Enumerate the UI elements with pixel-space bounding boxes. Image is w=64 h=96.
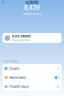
staticText: Health Sync: [9, 84, 29, 89]
staticText: 8,429: [24, 4, 40, 11]
staticText: Reminders: [9, 75, 26, 80]
button[interactable]: Health Sync: [2, 82, 61, 91]
staticText: Alex Moore: [12, 34, 31, 38]
staticText: SETTINGS: [4, 60, 19, 63]
button[interactable]: Back: [2, 1, 5, 4]
staticText: steps today: [22, 12, 41, 16]
button[interactable]: Reminders: [2, 73, 61, 82]
button[interactable]: Goals: [2, 64, 61, 73]
staticText: View profile: [12, 38, 30, 42]
button[interactable]: Alex Moore: [2, 33, 61, 43]
staticText: Activity: [25, 0, 38, 5]
staticText: Goals: [9, 66, 19, 71]
